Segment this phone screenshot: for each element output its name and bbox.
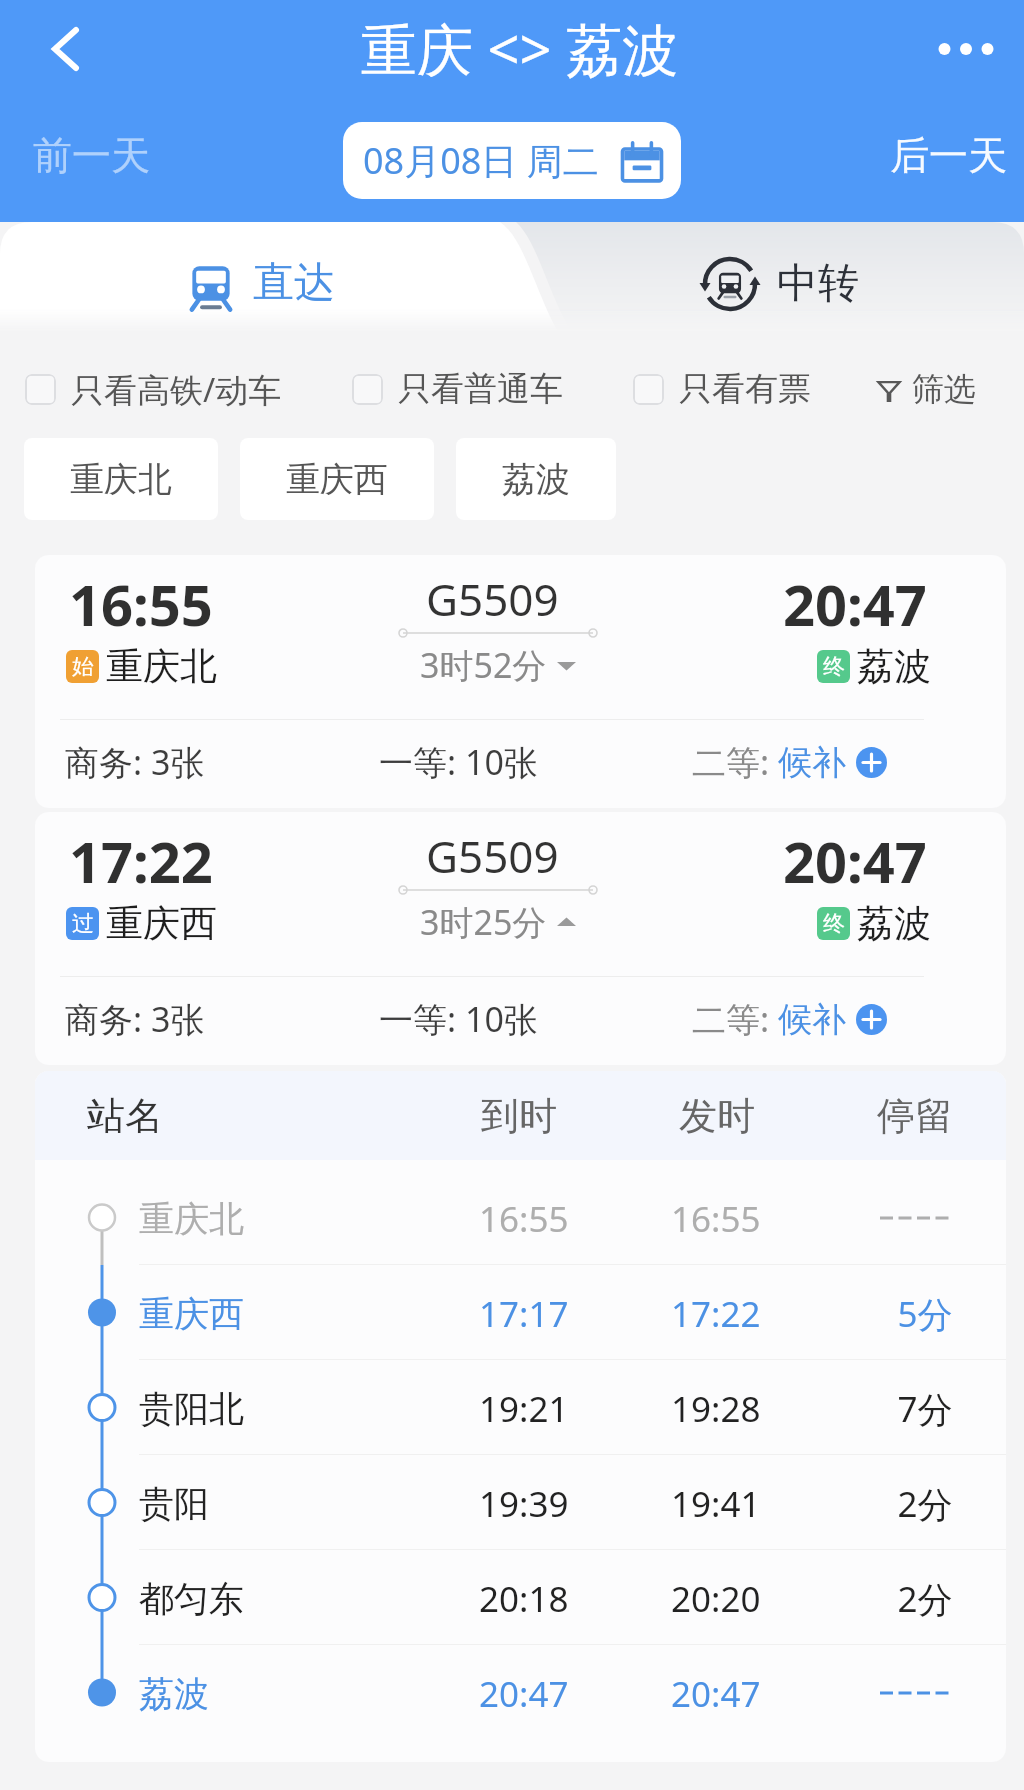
button[interactable]: 重庆西 (240, 438, 434, 520)
staticText: 16:55 (479, 1195, 569, 1243)
staticText: 20:47 (671, 1670, 761, 1718)
button[interactable]: 荔波 (35, 1645, 1006, 1740)
staticText: 候补 (778, 998, 846, 1041)
staticText: 19:41 (671, 1480, 761, 1528)
button[interactable]: 直达 (0, 222, 512, 332)
button[interactable]: 只看有票 (633, 368, 811, 410)
staticText: 20:18 (479, 1575, 569, 1623)
staticText: 重庆北 (70, 458, 172, 501)
staticText: 一等: 10张 (379, 739, 538, 785)
staticText: 二等: (692, 739, 778, 785)
staticText: 贵阳北 (139, 1387, 244, 1431)
staticText: 商务: 3张 (65, 996, 205, 1042)
staticText: 19:39 (479, 1480, 569, 1528)
staticText: 重庆北 (139, 1197, 244, 1241)
staticText: 荔波 (857, 643, 931, 690)
staticText: G5509 (426, 826, 559, 886)
staticText: 终 (823, 653, 845, 681)
staticText: 只看有票 (679, 368, 811, 410)
staticText: 始 (72, 653, 94, 681)
button[interactable]: 前一天 (33, 131, 150, 180)
staticText: 16:55 (69, 566, 213, 642)
staticText: 荔波 (502, 458, 570, 501)
staticText: 20:47 (479, 1670, 569, 1718)
button[interactable]: 贵阳 (35, 1455, 1006, 1550)
staticText: 3时25分 (420, 899, 547, 945)
staticText: 荔波 (139, 1672, 209, 1716)
staticText: 停留 (877, 1092, 953, 1140)
staticText: 中转 (777, 258, 859, 310)
staticText: 17:22 (671, 1290, 761, 1338)
staticText: 只看普通车 (398, 368, 563, 410)
staticText: 直达 (253, 257, 335, 309)
staticText: 20:20 (671, 1575, 761, 1623)
staticText: 重庆西 (106, 900, 217, 947)
button[interactable]: 荔波 (456, 438, 616, 520)
staticText: 7分 (889, 1385, 961, 1433)
staticText: 19:21 (479, 1385, 569, 1433)
staticText: 站名 (87, 1092, 163, 1140)
staticText: 重庆西 (139, 1292, 244, 1336)
staticText: 19:28 (671, 1385, 761, 1433)
staticText: 3时52分 (420, 642, 547, 688)
staticText: 过 (72, 910, 94, 938)
staticText: 候补 (778, 741, 846, 784)
button[interactable]: 贵阳北 (35, 1360, 1006, 1455)
button[interactable]: Add to waitlist (856, 1004, 887, 1035)
staticText: 筛选 (912, 369, 976, 409)
button[interactable]: 筛选 (878, 369, 1024, 409)
button[interactable]: 都匀东 (35, 1550, 1006, 1645)
staticText: 重庆西 (286, 458, 388, 501)
staticText: 2分 (889, 1480, 961, 1528)
button[interactable]: More options (929, 12, 1003, 86)
button[interactable]: 中转 (0, 222, 1024, 332)
button[interactable]: 只看高铁/动车 (25, 367, 282, 412)
staticText: 5分 (889, 1290, 961, 1338)
staticText: 20:47 (783, 823, 927, 899)
staticText: 只看高铁/动车 (71, 367, 282, 412)
button[interactable]: 重庆北 (35, 1170, 1006, 1265)
staticText: 16:55 (671, 1195, 761, 1243)
staticText: 20:47 (783, 566, 927, 642)
button[interactable]: 只看普通车 (352, 368, 563, 410)
staticText: 发时 (679, 1092, 755, 1140)
staticText: 都匀东 (139, 1577, 244, 1621)
staticText: 贵阳 (139, 1482, 209, 1526)
staticText: 荔波 (857, 900, 931, 947)
button[interactable]: 17:22 (35, 812, 1006, 1065)
staticText: 17:22 (69, 823, 213, 899)
staticText: 二等: (692, 996, 778, 1042)
staticText: 商务: 3张 (65, 739, 205, 785)
button[interactable]: 08月08日 周二 (343, 122, 681, 199)
staticText: 重庆北 (106, 643, 217, 690)
staticText: G5509 (426, 569, 559, 629)
button[interactable]: 16:55 (35, 555, 1006, 808)
staticText: 08月08日 周二 (363, 136, 599, 185)
staticText: 一等: 10张 (379, 996, 538, 1042)
button[interactable]: 重庆北 (24, 438, 218, 520)
staticText: 17:17 (479, 1290, 569, 1338)
staticText: 重庆 <> 荔波 (361, 10, 679, 86)
staticText: 到时 (481, 1092, 557, 1140)
staticText: 终 (823, 910, 845, 938)
button[interactable]: 后一天 (890, 131, 1007, 180)
button[interactable]: Add to waitlist (856, 747, 887, 778)
button[interactable]: 重庆西 (35, 1265, 1006, 1360)
staticText: 2分 (889, 1575, 961, 1623)
button[interactable]: Back (26, 10, 104, 88)
